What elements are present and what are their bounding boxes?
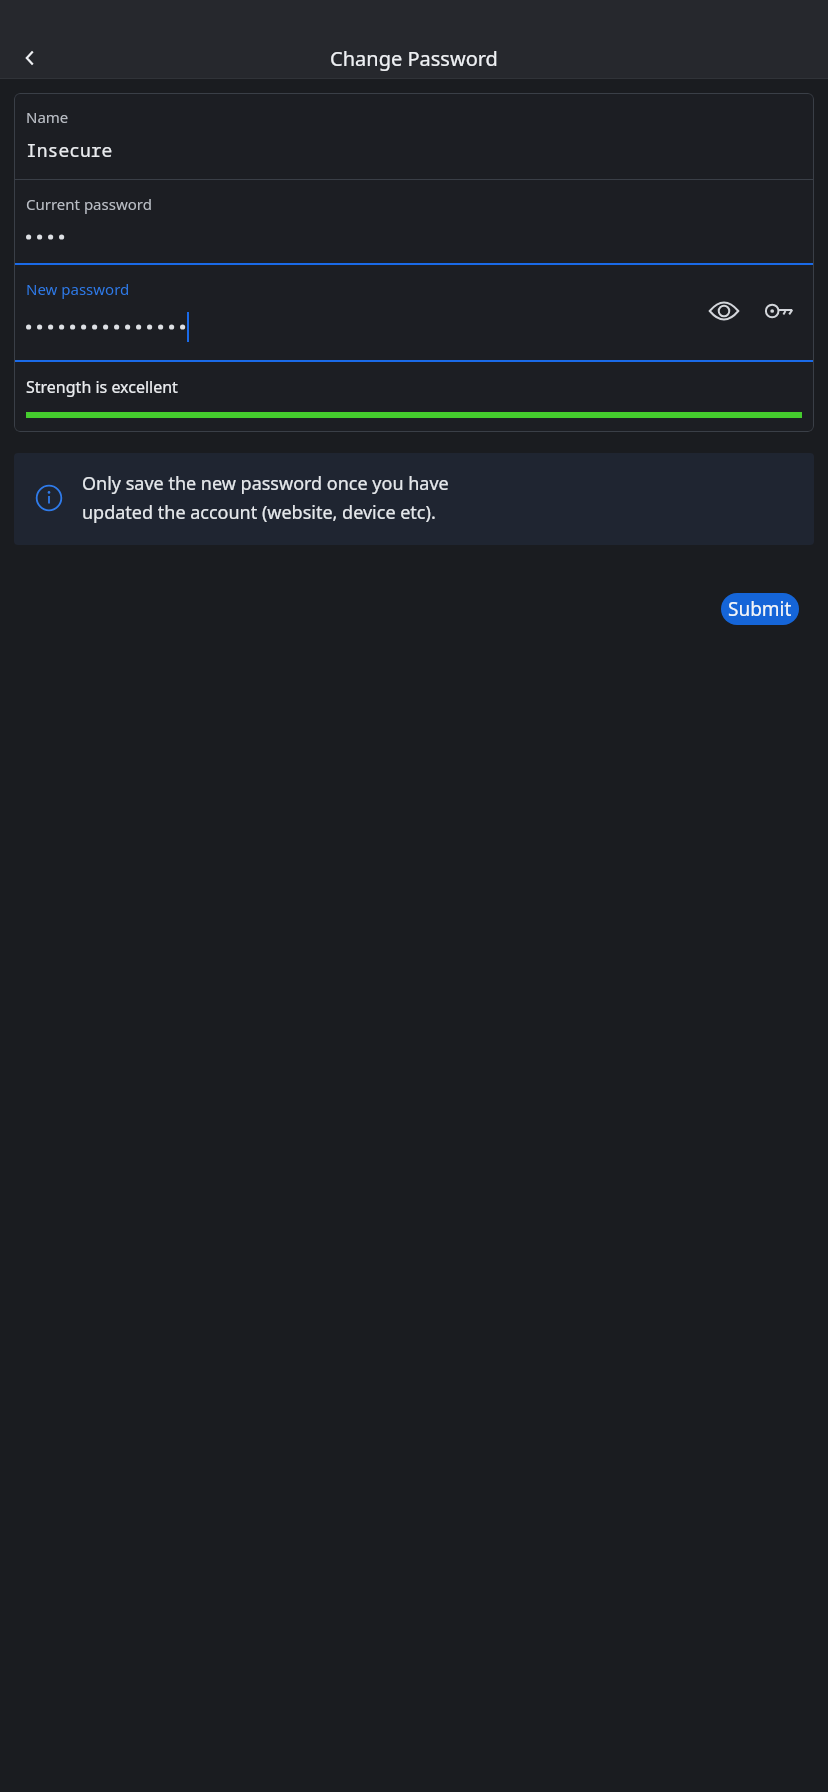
staticText: Submit [728, 596, 792, 622]
button[interactable]: Submit [721, 593, 799, 625]
staticText: Change Password [330, 45, 498, 72]
button[interactable]: Show password [702, 289, 746, 333]
button[interactable]: Current password [14, 180, 814, 263]
staticText: updated the account (website, device etc… [82, 500, 436, 525]
staticText: Only save the new password once you have [82, 471, 449, 496]
button[interactable]: Only save the new password once you have [14, 453, 814, 545]
button[interactable]: Generate password [758, 289, 802, 333]
staticText: Name [26, 107, 69, 127]
staticText: New password [26, 279, 130, 299]
staticText: Strength is excellent [26, 376, 178, 398]
staticText: Insecure [26, 138, 113, 163]
staticText: Current password [26, 194, 152, 214]
button[interactable]: New password [14, 265, 814, 360]
button[interactable]: Back [10, 38, 50, 78]
button[interactable]: Name [14, 93, 814, 179]
